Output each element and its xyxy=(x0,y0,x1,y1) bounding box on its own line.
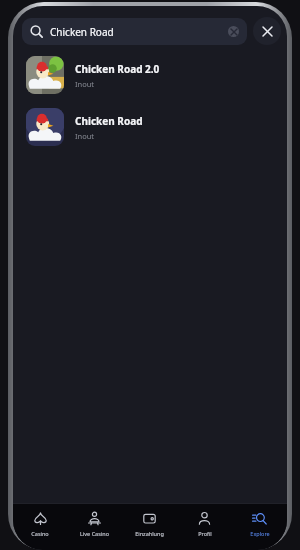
button[interactable]: Live Casino xyxy=(67,504,122,550)
staticText: Chicken Road xyxy=(50,25,114,39)
button[interactable]: Einzahlung xyxy=(122,504,177,550)
button[interactable]: Profil xyxy=(177,504,232,550)
button[interactable]: Explore xyxy=(232,504,287,550)
button[interactable]: Close xyxy=(253,17,281,45)
staticText: Einzahlung xyxy=(135,530,164,537)
staticText: Explore xyxy=(250,530,270,537)
staticText: Live Casino xyxy=(80,530,109,537)
staticText: Chicken Road xyxy=(75,114,143,128)
staticText: Inout xyxy=(75,131,95,141)
button[interactable]: Chicken Road xyxy=(22,18,247,45)
button[interactable]: Clear search xyxy=(228,26,239,37)
staticText: Profil xyxy=(198,530,212,537)
button[interactable]: Chicken Road 2.0 xyxy=(13,49,287,101)
staticText: Casino xyxy=(31,530,49,537)
button[interactable]: Chicken Road xyxy=(13,101,287,153)
staticText: Chicken Road 2.0 xyxy=(75,62,160,76)
button[interactable]: Casino xyxy=(13,504,67,550)
staticText: Inout xyxy=(75,79,95,89)
